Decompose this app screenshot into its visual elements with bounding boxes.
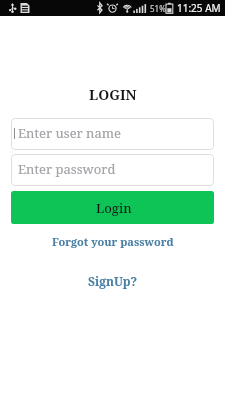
staticText: 11:25 AM [177,1,221,15]
staticText: Enter password [18,160,116,178]
button[interactable]: Enter user name [11,118,214,150]
button[interactable]: Forgot your password [0,233,225,250]
staticText: Forgot your password [52,234,174,249]
button[interactable]: Login [11,191,214,224]
button[interactable]: SignUp? [0,272,225,289]
staticText: Enter user name [18,124,122,142]
button[interactable]: Enter password [11,154,214,186]
other: Status bar [0,0,225,16]
staticText: LOGIN [89,85,137,101]
staticText: 51% [150,3,166,14]
staticText: SignUp? [88,273,138,289]
staticText: Login [96,199,132,217]
